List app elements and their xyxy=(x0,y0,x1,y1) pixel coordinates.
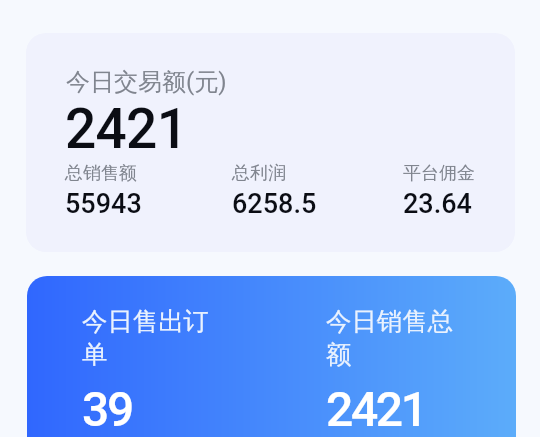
staticText: 总销售额 xyxy=(65,162,137,185)
button[interactable]: 今日售出订单 xyxy=(82,306,252,436)
button[interactable]: 今日交易额(元) xyxy=(26,33,515,252)
staticText: 2421 xyxy=(326,381,426,437)
staticText: 55943 xyxy=(65,188,142,220)
staticText: 39 xyxy=(82,381,132,437)
staticText: 今日销售总额 xyxy=(326,306,461,370)
staticText: 总利润 xyxy=(232,162,286,185)
staticText: 2421 xyxy=(65,97,188,161)
staticText: 23.64 xyxy=(403,188,472,220)
button[interactable]: 今日售出订单 xyxy=(27,276,516,437)
staticText: 6258.5 xyxy=(232,188,317,220)
staticText: 平台佣金 xyxy=(403,162,475,185)
staticText: 今日售出订单 xyxy=(82,306,217,370)
button[interactable]: 总销售额 xyxy=(65,162,230,220)
staticText: 今日交易额(元) xyxy=(66,67,227,97)
button[interactable]: 总利润 xyxy=(232,162,402,220)
button[interactable]: 平台佣金 xyxy=(403,162,515,220)
button[interactable]: 今日销售总额 xyxy=(326,306,496,436)
